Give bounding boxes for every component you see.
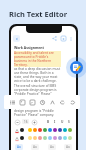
staticText: B <box>47 120 50 124</box>
staticText: The overall structure of BMS corporate d… <box>14 84 61 100</box>
button[interactable]: Colour <box>68 136 72 140</box>
button[interactable]: Toolbar action 4 <box>48 98 56 106</box>
staticText: I <box>54 120 56 124</box>
button[interactable]: Toolbar action 6 <box>68 98 76 106</box>
staticText: U <box>61 120 64 124</box>
button[interactable]: Aa <box>64 144 72 150</box>
button[interactable]: Colour <box>38 136 42 140</box>
staticText: Aa <box>17 145 21 149</box>
button[interactable]: Increase size <box>31 119 37 125</box>
staticText: Work Assignment <box>14 45 44 50</box>
button[interactable]: Toolbar action 2 <box>28 98 36 106</box>
staticText: Aa <box>50 145 54 149</box>
button[interactable]: Toolbar action 1 <box>18 98 26 106</box>
button[interactable]: Colour <box>53 136 57 140</box>
button[interactable]: Colour <box>63 136 67 140</box>
button[interactable]: S <box>66 119 72 125</box>
button[interactable]: Aa <box>48 144 56 150</box>
button[interactable]: Colour <box>38 128 42 132</box>
staticText: The overall structure of BMS corporate <box>14 101 61 109</box>
button[interactable]: Colour <box>58 128 62 132</box>
button[interactable]: Colour <box>63 128 67 132</box>
button[interactable]: 16 <box>22 119 29 124</box>
button[interactable]: Colour <box>43 136 47 140</box>
staticText: as that a deep discussion must use these… <box>14 67 61 83</box>
button[interactable]: Colour <box>28 136 32 140</box>
button[interactable]: Colour <box>28 128 32 132</box>
button[interactable]: Colour <box>33 128 37 132</box>
button[interactable]: Aa <box>15 144 23 150</box>
button[interactable]: More options <box>68 36 74 42</box>
staticText: 16 <box>24 120 28 124</box>
staticText: S <box>68 120 70 124</box>
button[interactable]: Colour <box>33 136 37 140</box>
button[interactable]: Colour <box>58 136 62 140</box>
button[interactable]: Colour <box>53 128 57 132</box>
button[interactable]: Colour <box>68 128 72 132</box>
button[interactable]: Colour <box>48 136 52 140</box>
staticText: Aa <box>66 145 70 149</box>
staticText: Rich Text Editor <box>9 9 68 19</box>
button[interactable]: Toolbar action 0 <box>8 98 16 106</box>
button[interactable]: Toolbar action 3 <box>38 98 46 106</box>
button[interactable]: Toolbar action 5 <box>58 98 66 106</box>
button[interactable]: Highlight colour <box>14 136 19 141</box>
staticText: Accessibility and talent are paramount t… <box>14 51 61 67</box>
button[interactable]: Black <box>20 136 24 140</box>
button[interactable]: Colour <box>48 128 52 132</box>
button[interactable]: U <box>59 119 65 125</box>
button[interactable]: Decrease size <box>14 119 20 125</box>
button[interactable]: Text colour <box>14 128 19 133</box>
button[interactable]: Save <box>60 35 67 42</box>
button[interactable]: Black <box>20 128 24 132</box>
staticText: design program is "Priddle Practice" Ple… <box>14 109 61 117</box>
button[interactable]: Colour <box>43 128 47 132</box>
button[interactable]: Share <box>51 35 58 42</box>
button[interactable]: I <box>52 119 58 125</box>
staticText: Aa <box>33 145 37 149</box>
button[interactable]: B <box>45 119 51 125</box>
button[interactable]: Back <box>13 35 20 42</box>
button[interactable]: Edit document <box>70 61 83 74</box>
button[interactable]: Aa <box>31 144 39 150</box>
